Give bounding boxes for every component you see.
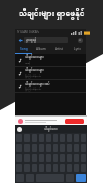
staticText: 9:14 AM 0.6KB/s — [17, 30, 39, 34]
staticText: ရှာဖွေရန် — [26, 38, 37, 43]
staticText: Song — [20, 47, 28, 51]
button[interactable]: Voice input — [17, 127, 22, 132]
button[interactable] — [76, 174, 86, 182]
button[interactable]: Back — [17, 37, 24, 44]
staticText: သီချင်းလေးများ ထပ် — [25, 81, 50, 86]
button[interactable]: ရှာဖွေရန် — [26, 37, 66, 43]
staticText: သီချင်းလေး — [44, 127, 58, 132]
button[interactable]: သီချင်းလေးများ ထပ် — [15, 80, 86, 92]
button[interactable]: Lyric — [68, 45, 86, 54]
staticText: သီချင်းများ ရှာဖွေနိုင် — [19, 7, 85, 20]
staticText: ✕ — [79, 39, 82, 42]
button[interactable]: Clear search — [78, 38, 83, 43]
staticText: အဆို — [25, 61, 31, 65]
staticText: Artist — [55, 47, 64, 51]
staticText: Album — [36, 47, 46, 51]
button[interactable]: Album — [32, 45, 50, 54]
staticText: Lyric — [74, 47, 81, 51]
staticText: ဖြိုးကြီး ထိန်လင်း — [25, 87, 41, 91]
button[interactable]: Song — [15, 45, 32, 54]
button[interactable]: Artist — [50, 45, 68, 54]
staticText: သီချင်းလေးများ — [25, 55, 44, 60]
button[interactable]: သီချင်းလေးများ — [15, 67, 86, 79]
button[interactable] — [65, 119, 84, 124]
staticText: သီချင်းလေးများ — [25, 68, 44, 73]
staticText: ဖြိုးကြီး ထိန်လင်း — [25, 74, 41, 78]
button[interactable]: သီချင်းလေးများ — [15, 54, 86, 66]
